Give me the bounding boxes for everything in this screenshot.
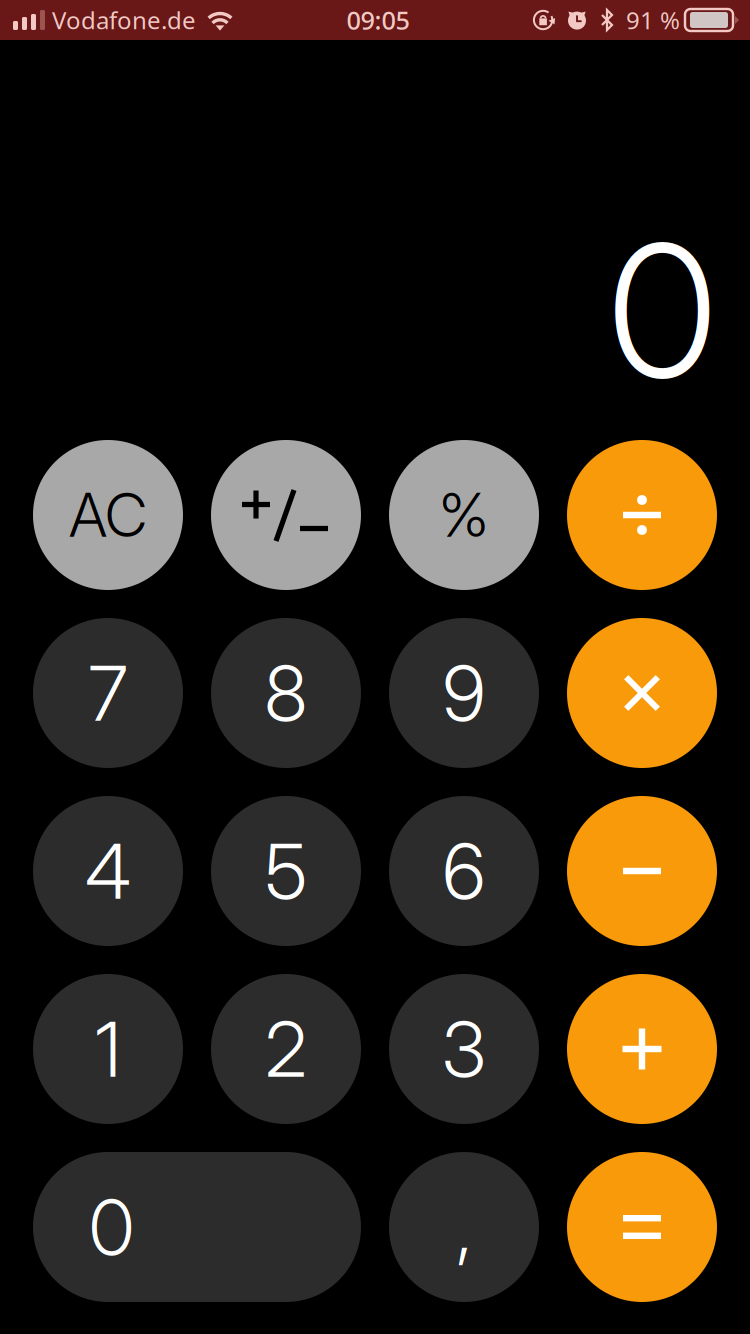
staticText: % — [439, 479, 489, 551]
button[interactable]: Minus — [567, 796, 717, 946]
button[interactable]: Multiply — [567, 618, 717, 768]
staticText: 1 — [95, 1003, 121, 1095]
staticText: AC — [69, 479, 147, 551]
button[interactable]: 1 — [33, 974, 183, 1124]
button[interactable]: AC — [33, 440, 183, 590]
staticText: 5 — [265, 825, 307, 917]
staticText: 2 — [265, 1003, 307, 1095]
button[interactable]: 9 — [389, 618, 539, 768]
button[interactable]: % — [389, 440, 539, 590]
button[interactable]: 7 — [33, 618, 183, 768]
staticText: , — [456, 1181, 472, 1273]
staticText: 3 — [442, 1003, 486, 1095]
button[interactable]: 8 — [211, 618, 361, 768]
staticText: 09:05 — [346, 3, 409, 37]
staticText: 91 % — [626, 4, 680, 36]
button[interactable]: Plus — [567, 974, 717, 1124]
button[interactable]: Plus minus — [211, 440, 361, 590]
staticText: Vodafone.de — [52, 4, 196, 36]
button[interactable]: 4 — [33, 796, 183, 946]
button[interactable]: 0 — [33, 1152, 361, 1302]
staticText: 8 — [264, 647, 307, 739]
button[interactable]: 3 — [389, 974, 539, 1124]
staticText: 4 — [85, 825, 131, 917]
button[interactable]: Divide — [567, 440, 717, 590]
staticText: 7 — [88, 647, 127, 739]
staticText: 0 — [608, 200, 717, 421]
button[interactable]: Equals — [567, 1152, 717, 1302]
staticText: 0 — [89, 1181, 134, 1273]
staticText: 9 — [442, 647, 485, 739]
button[interactable]: 5 — [211, 796, 361, 946]
button[interactable]: 6 — [389, 796, 539, 946]
button[interactable]: 2 — [211, 974, 361, 1124]
staticText: 6 — [442, 825, 485, 917]
button[interactable]: , — [389, 1152, 539, 1302]
